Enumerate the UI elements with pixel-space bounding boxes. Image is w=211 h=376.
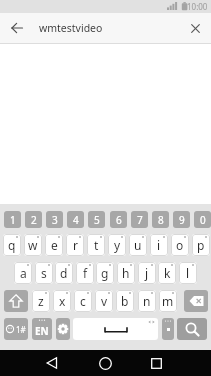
- button[interactable]: c: [74, 290, 92, 312]
- staticText: 9: [179, 213, 185, 227]
- staticText: 7: [137, 213, 143, 227]
- button[interactable]: s: [35, 262, 53, 284]
- staticText: p: [197, 237, 205, 253]
- staticText: u: [134, 237, 142, 253]
- staticText: o: [176, 237, 184, 253]
- button[interactable]: [184, 290, 208, 312]
- button[interactable]: [56, 318, 70, 340]
- button[interactable]: o: [171, 234, 189, 256]
- button[interactable]: [177, 318, 207, 340]
- button[interactable]: EN: [32, 318, 52, 340]
- button[interactable]: 1: [4, 211, 21, 228]
- button[interactable]: 8: [152, 211, 169, 228]
- button[interactable]: [91, 350, 119, 376]
- button[interactable]: [73, 318, 158, 340]
- staticText: 10:00: [187, 1, 208, 12]
- button[interactable]: w: [24, 234, 42, 256]
- staticText: z: [38, 293, 44, 309]
- staticText: f: [83, 265, 88, 281]
- button[interactable]: 1#: [4, 318, 28, 340]
- staticText: l: [186, 265, 190, 281]
- button[interactable]: 5: [88, 211, 105, 228]
- staticText: w: [28, 237, 38, 253]
- staticText: 3: [52, 213, 58, 227]
- staticText: n: [143, 293, 151, 309]
- staticText: m: [162, 293, 174, 309]
- button[interactable]: r: [66, 234, 84, 256]
- button[interactable]: j: [138, 262, 156, 284]
- staticText: EN: [35, 324, 49, 338]
- button[interactable]: h: [117, 262, 135, 284]
- button[interactable]: 3: [46, 211, 63, 228]
- staticText: t: [94, 237, 99, 253]
- staticText: e: [51, 237, 58, 253]
- staticText: j: [145, 265, 149, 281]
- button[interactable]: d: [55, 262, 73, 284]
- staticText: s: [41, 265, 47, 281]
- button[interactable]: v: [95, 290, 113, 312]
- staticText: a: [20, 265, 27, 281]
- staticText: c: [80, 293, 86, 309]
- staticText: b: [121, 293, 129, 309]
- button[interactable]: 4: [67, 211, 84, 228]
- staticText: 8: [158, 213, 164, 227]
- button[interactable]: 0: [194, 211, 211, 228]
- button[interactable]: m: [159, 290, 177, 312]
- staticText: wmtestvideo: [39, 21, 103, 35]
- staticText: 1#: [16, 324, 26, 335]
- staticText: 5: [94, 213, 100, 227]
- button[interactable]: a: [14, 262, 32, 284]
- staticText: v: [101, 293, 108, 309]
- button[interactable]: [4, 290, 28, 312]
- button[interactable]: p: [192, 234, 210, 256]
- button[interactable]: e: [45, 234, 63, 256]
- button[interactable]: [38, 350, 66, 376]
- button[interactable]: [6, 17, 28, 39]
- staticText: 6: [116, 213, 122, 227]
- button[interactable]: i: [150, 234, 168, 256]
- staticText: k: [164, 265, 171, 281]
- button[interactable]: f: [76, 262, 94, 284]
- button[interactable]: [185, 18, 205, 38]
- button[interactable]: u: [129, 234, 147, 256]
- button[interactable]: b: [116, 290, 134, 312]
- button[interactable]: l: [179, 262, 197, 284]
- staticText: x: [59, 293, 66, 309]
- staticText: g: [101, 265, 109, 281]
- staticText: 2: [31, 213, 37, 227]
- button[interactable]: [162, 318, 174, 340]
- staticText: 0: [200, 213, 206, 227]
- button[interactable]: t: [87, 234, 105, 256]
- staticText: y: [114, 237, 121, 253]
- staticText: 4: [73, 213, 79, 227]
- button[interactable]: [142, 350, 170, 376]
- staticText: h: [122, 265, 130, 281]
- button[interactable]: x: [53, 290, 71, 312]
- button[interactable]: 6: [110, 211, 127, 228]
- staticText: i: [157, 237, 161, 253]
- button[interactable]: g: [96, 262, 114, 284]
- button[interactable]: y: [108, 234, 126, 256]
- button[interactable]: z: [32, 290, 50, 312]
- staticText: q: [8, 237, 16, 253]
- button[interactable]: k: [158, 262, 176, 284]
- staticText: d: [60, 265, 68, 281]
- button[interactable]: n: [138, 290, 156, 312]
- staticText: r: [73, 237, 78, 253]
- button[interactable]: 9: [173, 211, 190, 228]
- button[interactable]: q: [3, 234, 21, 256]
- staticText: 1: [10, 213, 16, 227]
- button[interactable]: 7: [131, 211, 148, 228]
- button[interactable]: 2: [25, 211, 42, 228]
